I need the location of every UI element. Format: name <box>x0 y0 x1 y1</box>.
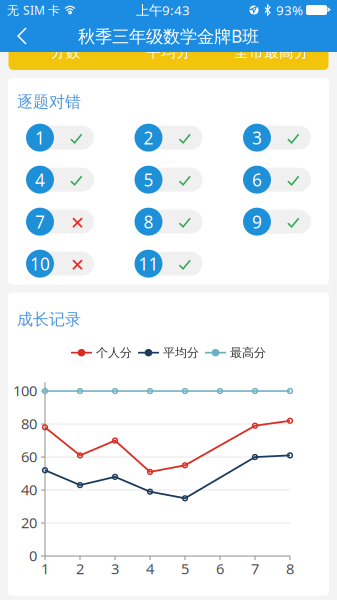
staticText: 上午9:43 <box>136 1 190 19</box>
staticText: 100 <box>13 381 37 400</box>
staticText: 60 <box>21 447 37 466</box>
staticText: 2 <box>143 126 153 149</box>
staticText: 最高分 <box>230 345 266 360</box>
staticText: 4 <box>35 168 45 191</box>
staticText: 1 <box>41 559 49 578</box>
button[interactable]: 4 <box>26 166 94 194</box>
button[interactable]: 返回 <box>0 20 44 52</box>
staticText: 2 <box>76 559 84 578</box>
staticText: 20 <box>21 513 37 532</box>
staticText: 6 <box>252 168 262 191</box>
staticText: 6 <box>216 559 224 578</box>
staticText: 平均分 <box>146 43 191 61</box>
staticText: 全市最高分 <box>234 43 309 61</box>
staticText: 成长记录 <box>17 310 81 329</box>
staticText: 个人分 <box>96 345 132 360</box>
button[interactable]: 6 <box>243 166 311 194</box>
staticText: 93% <box>276 1 303 19</box>
staticText: 5 <box>181 559 189 578</box>
staticText: 平均分 <box>163 345 199 360</box>
button[interactable]: 7 <box>26 208 94 236</box>
staticText: 40 <box>21 480 37 499</box>
staticText: 分数 <box>50 43 80 61</box>
staticText: 0 <box>29 546 37 565</box>
button[interactable]: 10 <box>26 250 94 278</box>
staticText: 9 <box>252 210 262 233</box>
button[interactable]: 11 <box>134 250 202 278</box>
button[interactable]: 9 <box>243 208 311 236</box>
staticText: 4 <box>146 559 154 578</box>
button[interactable]: 3 <box>243 124 311 152</box>
staticText: 10 <box>30 252 50 275</box>
staticText: 8 <box>286 559 294 578</box>
button[interactable]: 5 <box>134 166 202 194</box>
button[interactable]: 2 <box>134 124 202 152</box>
staticText: 7 <box>251 559 259 578</box>
staticText: 3 <box>111 559 119 578</box>
staticText: 5 <box>143 168 153 191</box>
button[interactable]: 1 <box>26 124 94 152</box>
staticText: 8 <box>143 210 153 233</box>
staticText: 秋季三年级数学金牌B班 <box>78 24 259 47</box>
staticText: 无 SIM 卡 <box>7 2 60 18</box>
staticText: 逐题对错 <box>17 92 81 112</box>
staticText: 7 <box>35 210 45 233</box>
staticText: 11 <box>138 252 158 275</box>
staticText: 1 <box>35 126 45 149</box>
staticText: 80 <box>21 414 37 433</box>
staticText: 3 <box>252 126 262 149</box>
button[interactable]: 8 <box>134 208 202 236</box>
